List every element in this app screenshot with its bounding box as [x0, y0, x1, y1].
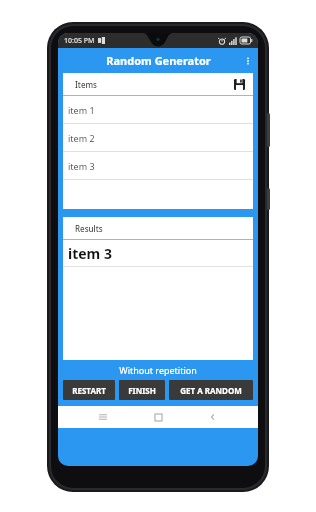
staticText: item 1	[68, 104, 95, 116]
button[interactable]: FINISH	[119, 380, 165, 400]
staticText: Results	[75, 223, 103, 234]
staticText: item 3	[68, 244, 112, 263]
staticText: 10:05 PM	[64, 36, 95, 46]
button[interactable]: item 3	[63, 240, 253, 266]
staticText: Items	[75, 79, 97, 90]
button[interactable]: item 2	[63, 124, 253, 152]
staticText: item 2	[68, 132, 95, 144]
staticText: GET A RANDOM	[180, 385, 242, 396]
button[interactable]: Recents	[93, 407, 113, 427]
button[interactable]: Home	[148, 407, 168, 427]
staticText: RESTART	[72, 385, 106, 396]
button[interactable]: GET A RANDOM	[169, 380, 253, 400]
button[interactable]: RESTART	[63, 380, 115, 400]
button[interactable]: item 3	[63, 152, 253, 180]
button[interactable]: Back	[203, 407, 223, 427]
button[interactable]: Save	[231, 76, 247, 92]
staticText: item 3	[68, 160, 95, 172]
staticText: FINISH	[128, 385, 156, 396]
button[interactable]: More options	[238, 51, 258, 71]
staticText: Without repetition	[58, 364, 258, 376]
button[interactable]: item 1	[63, 96, 253, 124]
staticText: Random Generator	[106, 53, 211, 68]
